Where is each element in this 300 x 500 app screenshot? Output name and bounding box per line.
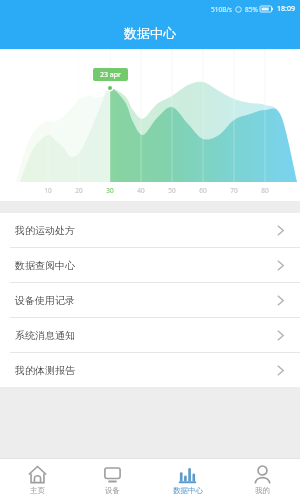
staticText: 40	[137, 186, 145, 195]
staticText: 设备使用记录	[15, 294, 75, 307]
staticText: 数据中心	[124, 25, 176, 41]
button[interactable]: 设备使用记录	[0, 283, 300, 317]
staticText: 20	[75, 186, 83, 195]
button[interactable]: Data center	[150, 459, 225, 500]
button[interactable]: 我的运动处方	[0, 213, 300, 247]
button[interactable]: 系统消息通知	[0, 318, 300, 352]
button[interactable]: 数据查阅中心	[0, 248, 300, 282]
staticText: 我的体测报告	[15, 364, 75, 377]
staticText: 数据查阅中心	[15, 259, 75, 272]
staticText: 设备	[105, 486, 120, 495]
staticText: 数据中心	[173, 486, 203, 495]
staticText: 主页	[30, 486, 45, 495]
staticText: 30	[106, 186, 114, 195]
staticText: 50	[168, 186, 176, 195]
staticText: 我的运动处方	[15, 224, 75, 237]
staticText: 系统消息通知	[15, 329, 75, 342]
button[interactable]: 我的体测报告	[0, 353, 300, 387]
staticText: 85%	[245, 5, 258, 14]
staticText: 10	[44, 186, 52, 195]
button[interactable]: Devices	[75, 459, 150, 500]
staticText: 我的	[255, 486, 270, 495]
staticText: 60	[199, 186, 207, 195]
button[interactable]: Home	[0, 459, 75, 500]
staticText: 70	[230, 186, 238, 195]
staticText: 80	[261, 186, 269, 195]
staticText: 510B/s	[211, 5, 232, 14]
staticText: 23 apr	[100, 70, 121, 80]
staticText: 18:09	[277, 4, 295, 14]
button[interactable]: Profile	[225, 459, 300, 500]
